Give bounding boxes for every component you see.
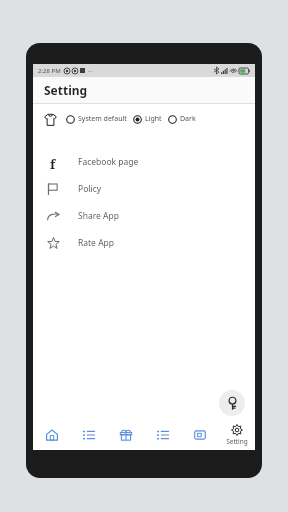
button[interactable]: Light xyxy=(133,114,162,124)
staticText: Dark xyxy=(180,114,196,124)
staticText: Setting xyxy=(44,82,88,98)
button[interactable]: System default xyxy=(66,114,127,124)
staticText: Light xyxy=(145,114,162,124)
button[interactable]: f xyxy=(33,148,255,175)
staticText: f xyxy=(50,155,56,169)
staticText: Share App xyxy=(78,210,119,222)
button[interactable]: Search xyxy=(219,390,245,416)
staticText: Policy xyxy=(78,183,102,195)
staticText: Setting xyxy=(226,437,248,446)
button[interactable]: Dark xyxy=(168,114,196,124)
staticText: 2:28 PM xyxy=(38,67,61,75)
button[interactable]: Policy xyxy=(33,175,255,202)
staticText: Rate App xyxy=(78,237,115,249)
staticText: ··· xyxy=(88,67,93,75)
button[interactable]: Home xyxy=(33,420,70,450)
button[interactable]: List xyxy=(70,420,107,450)
button[interactable]: Categories xyxy=(144,420,181,450)
button[interactable]: Setting xyxy=(218,420,255,450)
staticText: Facebook page xyxy=(78,156,139,168)
button[interactable]: Video xyxy=(181,420,218,450)
staticText: System default xyxy=(78,114,127,124)
button[interactable]: Gift xyxy=(107,420,144,450)
button[interactable]: Rate App xyxy=(33,229,255,256)
button[interactable]: Share App xyxy=(33,202,255,229)
